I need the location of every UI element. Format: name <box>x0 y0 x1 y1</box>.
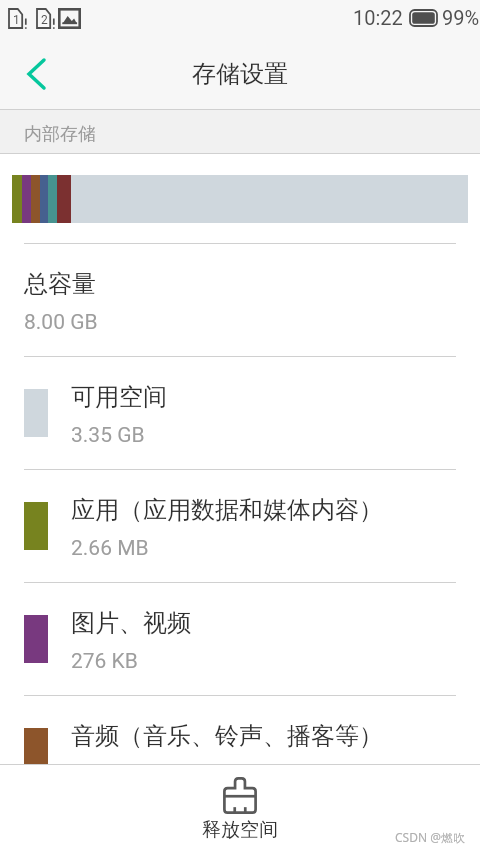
staticText: 可用空间 <box>71 382 167 412</box>
staticText: 图片、视频 <box>71 608 191 638</box>
staticText: CSDN @燃吹 <box>395 829 465 845</box>
staticText: 8.00 GB <box>24 310 98 335</box>
button[interactable]: 音频（音乐、铃声、播客等） <box>0 696 480 808</box>
staticText: 1 <box>13 13 20 27</box>
staticText: 2 <box>41 13 48 27</box>
staticText: 存储设置 <box>192 59 288 89</box>
staticText: 释放空间 <box>202 818 278 842</box>
button[interactable]: 总容量 <box>0 244 480 356</box>
button[interactable]: Back <box>0 40 70 110</box>
staticText: 内部存储 <box>24 123 96 146</box>
staticText: 2.66 MB <box>71 536 149 561</box>
button[interactable]: 可用空间 <box>0 357 480 469</box>
staticText: 应用（应用数据和媒体内容） <box>71 495 383 525</box>
staticText: 3.35 GB <box>71 423 145 448</box>
staticText: 276 KB <box>71 649 138 674</box>
staticText: 总容量 <box>24 269 96 299</box>
staticText: 10:22 <box>353 6 403 29</box>
staticText: 0 B <box>71 762 102 787</box>
button[interactable]: 应用（应用数据和媒体内容） <box>0 470 480 582</box>
button[interactable]: 释放空间 <box>202 777 278 842</box>
staticText: 音频（音乐、铃声、播客等） <box>71 721 383 751</box>
button[interactable]: 图片、视频 <box>0 583 480 695</box>
staticText: 99% <box>442 6 480 29</box>
